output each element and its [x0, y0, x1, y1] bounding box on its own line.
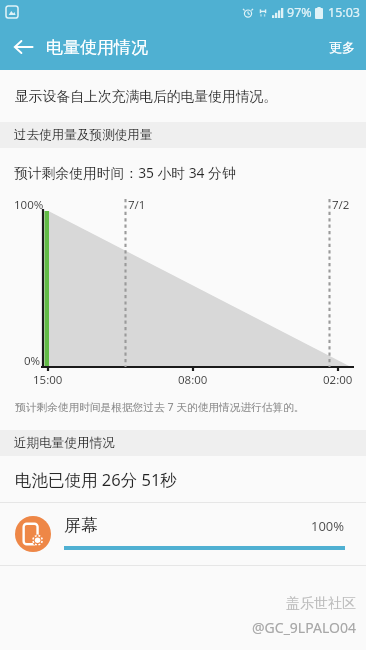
staticText: 盖乐世社区	[286, 595, 356, 613]
staticText: 预计剩余使用时间：35 小时 34 分钟	[14, 163, 236, 182]
button[interactable]: 更多	[314, 26, 366, 68]
staticText: 100%	[14, 197, 44, 213]
staticText: 7/1	[128, 197, 146, 213]
staticText: 7/2	[332, 197, 350, 213]
staticText: 预计剩余使用时间是根据您过去 7 天的使用情况进行估算的。	[15, 400, 305, 415]
button[interactable]: Back	[0, 24, 46, 70]
staticText: 02:00	[323, 372, 353, 388]
staticText: 0%	[24, 353, 41, 369]
staticText: 屏幕	[64, 515, 98, 536]
staticText: 过去使用量及预测使用量	[14, 127, 153, 143]
staticText: @GC_9LPALO04	[252, 618, 356, 637]
staticText: 电量使用情况	[46, 37, 148, 58]
staticText: 100%	[311, 517, 345, 535]
staticText: 15:03	[328, 4, 360, 21]
staticText: 近期电量使用情况	[14, 435, 115, 451]
staticText: 97%	[287, 4, 312, 21]
staticText: 显示设备自上次充满电后的电量使用情况。	[15, 88, 278, 105]
staticText: 电池已使用 26分 51秒	[15, 468, 177, 491]
staticText: 08:00	[178, 372, 208, 388]
staticText: 更多	[329, 39, 355, 55]
staticText: 15:00	[33, 372, 63, 388]
button[interactable]: 屏幕	[0, 503, 366, 565]
